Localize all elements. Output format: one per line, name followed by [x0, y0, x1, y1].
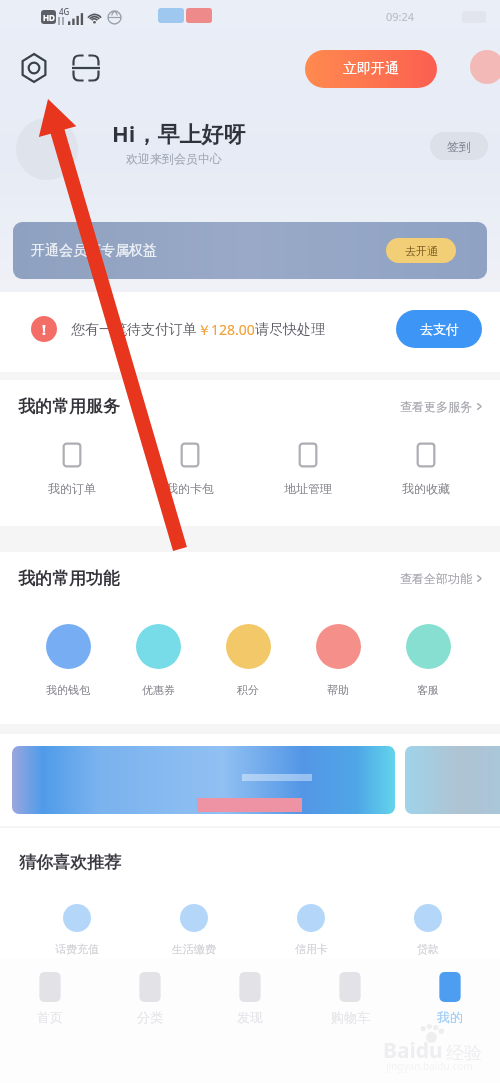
- staticText: 我的钱包: [46, 683, 90, 697]
- button[interactable]: Avatar: [16, 118, 78, 180]
- staticText: 您有一笔待支付订单: [71, 321, 197, 339]
- button[interactable]: 签到: [430, 132, 488, 160]
- button[interactable]: 我的订单: [13, 442, 131, 496]
- staticText: Baidu: [383, 1036, 443, 1065]
- button[interactable]: 我的钱包: [23, 624, 113, 697]
- staticText: 去支付: [420, 321, 459, 337]
- staticText: 地址管理: [284, 481, 332, 496]
- staticText: 信用卡: [295, 942, 328, 956]
- button[interactable]: Notifications: [470, 50, 500, 84]
- button[interactable]: 地址管理: [249, 442, 367, 496]
- button[interactable]: 开通会员享专属权益: [13, 222, 487, 279]
- button[interactable]: 去支付: [396, 310, 482, 348]
- button[interactable]: Scan: [66, 48, 106, 88]
- staticText: HD: [43, 12, 55, 23]
- staticText: 分类: [137, 1009, 163, 1025]
- staticText: 客服: [417, 683, 439, 697]
- button[interactable]: 优惠券: [113, 624, 203, 697]
- staticText: 我的订单: [48, 481, 96, 496]
- staticText: 生活缴费: [172, 942, 216, 956]
- staticText: ￥128.00: [197, 320, 255, 339]
- staticText: 4G: [59, 6, 70, 17]
- staticText: 话费充值: [55, 942, 99, 956]
- staticText: 查看全部功能: [400, 571, 472, 586]
- button[interactable]: 话费充值: [18, 904, 136, 956]
- button[interactable]: 帮助: [293, 624, 383, 697]
- staticText: 查看更多服务: [400, 399, 472, 414]
- staticText: 我的卡包: [166, 481, 214, 496]
- button[interactable]: Promotion banner: [12, 746, 395, 814]
- staticText: 我的常用服务: [18, 396, 120, 417]
- staticText: 开通会员享专属权益: [31, 242, 157, 260]
- button[interactable]: Next banner: [405, 746, 500, 814]
- staticText: 签到: [447, 139, 471, 154]
- staticText: 去开通: [405, 244, 438, 258]
- staticText: Hi，早上好呀: [112, 118, 246, 148]
- button[interactable]: 我的: [400, 972, 500, 1025]
- button[interactable]: 生活缴费: [135, 904, 253, 956]
- staticText: 我的: [437, 1009, 463, 1025]
- staticText: 经验: [446, 1042, 482, 1065]
- button[interactable]: 客服: [383, 624, 473, 697]
- staticText: 购物车: [331, 1009, 370, 1025]
- button[interactable]: 我的收藏: [367, 442, 485, 496]
- button[interactable]: 购物车: [300, 972, 400, 1025]
- staticText: !: [42, 320, 46, 339]
- button[interactable]: 立即开通: [305, 50, 437, 88]
- button[interactable]: 信用卡: [252, 904, 370, 956]
- button[interactable]: 首页: [0, 972, 100, 1025]
- staticText: 请尽快处理: [255, 321, 325, 339]
- button[interactable]: 分类: [100, 972, 200, 1025]
- button[interactable]: 查看更多服务: [400, 399, 484, 414]
- staticText: 09:24: [386, 9, 415, 24]
- staticText: 贷款: [417, 942, 439, 956]
- button[interactable]: 积分: [203, 624, 293, 697]
- staticText: 立即开通: [343, 60, 399, 78]
- staticText: 首页: [37, 1009, 63, 1025]
- button[interactable]: Settings: [14, 48, 54, 88]
- staticText: 猜你喜欢推荐: [19, 852, 121, 873]
- staticText: 积分: [237, 683, 259, 697]
- staticText: 帮助: [327, 683, 349, 697]
- button[interactable]: 查看全部功能: [400, 571, 484, 586]
- button[interactable]: 我的卡包: [131, 442, 249, 496]
- staticText: 我的常用功能: [18, 568, 120, 589]
- staticText: 我的收藏: [402, 481, 450, 496]
- button[interactable]: 发现: [200, 972, 300, 1025]
- staticText: 发现: [237, 1009, 263, 1025]
- staticText: jingyan.baidu.com: [386, 1059, 473, 1073]
- button[interactable]: 贷款: [369, 904, 487, 956]
- staticText: 优惠券: [142, 683, 175, 697]
- staticText: 欢迎来到会员中心: [126, 151, 222, 166]
